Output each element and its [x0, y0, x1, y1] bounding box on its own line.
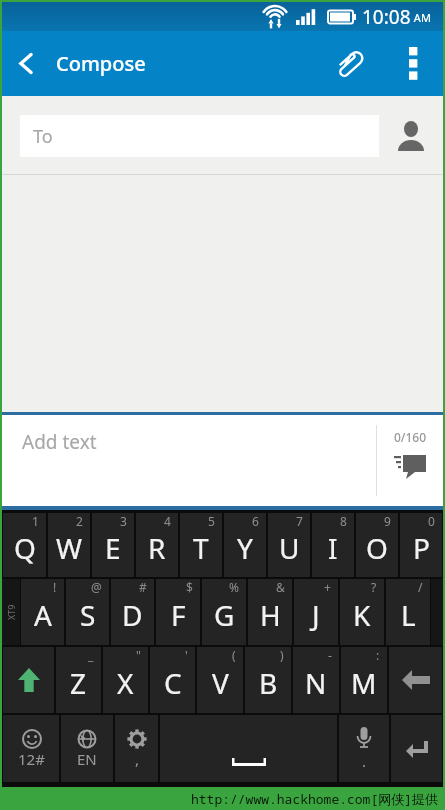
- staticText: K: [353, 596, 371, 634]
- staticText: J: [312, 596, 320, 634]
- staticText: To: [33, 124, 53, 149]
- button[interactable]: %: [202, 579, 246, 645]
- staticText: ,: [135, 749, 140, 769]
- button[interactable]: 6: [224, 513, 266, 577]
- staticText: S: [80, 596, 96, 634]
- staticText: 9: [384, 513, 391, 529]
- button[interactable]: EN: [61, 715, 113, 782]
- button[interactable]: (: [197, 647, 243, 713]
- staticText: Add text: [22, 429, 97, 455]
- button[interactable]: [379, 115, 443, 157]
- staticText: A: [34, 596, 52, 634]
- staticText: O: [366, 529, 388, 567]
- staticText: .: [362, 751, 367, 771]
- staticText: G: [214, 596, 235, 634]
- staticText: 8: [340, 513, 347, 529]
- button[interactable]: 3: [92, 513, 134, 577]
- staticText: Compose: [56, 50, 146, 77]
- staticText: F: [171, 596, 186, 634]
- button[interactable]: -: [293, 647, 339, 713]
- staticText: R: [148, 529, 166, 567]
- button[interactable]: 1: [3, 513, 46, 577]
- staticText: 0: [428, 513, 435, 529]
- button[interactable]: 9: [356, 513, 398, 577]
- staticText: ?: [371, 579, 377, 595]
- button[interactable]: [326, 31, 374, 96]
- button[interactable]: 0: [400, 513, 442, 577]
- button[interactable]: ": [103, 647, 148, 713]
- button[interactable]: !: [21, 579, 64, 645]
- staticText: AM: [411, 10, 431, 25]
- button[interactable]: &: [248, 579, 292, 645]
- staticText: Q: [14, 529, 36, 567]
- staticText: &: [276, 579, 285, 595]
- staticText: _: [88, 647, 94, 663]
- staticText: U: [279, 529, 300, 567]
- button[interactable]: 12#: [3, 715, 59, 782]
- staticText: 2: [76, 513, 83, 529]
- staticText: ": [136, 647, 141, 663]
- button[interactable]: 0/160: [377, 415, 443, 506]
- button[interactable]: Add text: [2, 415, 376, 506]
- button[interactable]: :: [341, 647, 387, 713]
- staticText: ): [280, 647, 284, 663]
- staticText: 0/160: [394, 429, 427, 445]
- staticText: 5: [208, 513, 215, 529]
- button[interactable]: [160, 715, 337, 782]
- staticText: P: [413, 529, 430, 567]
- staticText: V: [212, 664, 229, 702]
- staticText: %: [229, 579, 239, 595]
- button[interactable]: [2, 31, 50, 96]
- staticText: 6: [252, 513, 259, 529]
- button[interactable]: ,: [115, 715, 158, 782]
- staticText: EN: [77, 749, 97, 769]
- staticText: B: [259, 664, 278, 702]
- staticText: N: [305, 664, 327, 702]
- staticText: #: [139, 579, 147, 595]
- button[interactable]: To: [20, 115, 379, 157]
- staticText: /: [418, 579, 423, 595]
- button[interactable]: ?: [340, 579, 384, 645]
- button[interactable]: 8: [312, 513, 354, 577]
- staticText: +: [324, 579, 331, 595]
- staticText: M: [351, 664, 377, 702]
- button[interactable]: $: [156, 579, 200, 645]
- button[interactable]: 5: [180, 513, 222, 577]
- button[interactable]: .: [339, 715, 389, 782]
- staticText: $: [186, 579, 193, 595]
- button[interactable]: #: [111, 579, 154, 645]
- staticText: !: [53, 579, 57, 595]
- button[interactable]: ): [245, 647, 291, 713]
- button[interactable]: @: [66, 579, 109, 645]
- button[interactable]: 4: [136, 513, 178, 577]
- button[interactable]: ': [150, 647, 195, 713]
- button[interactable]: +: [294, 579, 338, 645]
- staticText: L: [401, 596, 416, 634]
- staticText: @: [91, 579, 102, 595]
- button[interactable]: 2: [48, 513, 90, 577]
- button[interactable]: _: [56, 647, 101, 713]
- button[interactable]: [3, 647, 54, 713]
- staticText: http://www.hackhome.com[网侠]提供: [191, 790, 439, 808]
- staticText: (: [232, 647, 236, 663]
- staticText: H: [260, 596, 281, 634]
- staticText: 12#: [18, 749, 45, 769]
- button[interactable]: [391, 715, 442, 782]
- staticText: X: [117, 664, 134, 702]
- button[interactable]: 7: [268, 513, 310, 577]
- button[interactable]: /: [386, 579, 430, 645]
- staticText: E: [105, 529, 121, 567]
- staticText: D: [122, 596, 143, 634]
- staticText: W: [56, 529, 83, 567]
- staticText: 1: [32, 513, 39, 529]
- staticText: :: [376, 647, 380, 663]
- staticText: 7: [296, 513, 303, 529]
- staticText: I: [328, 529, 338, 567]
- staticText: Y: [237, 529, 253, 567]
- button[interactable]: [389, 647, 442, 713]
- button[interactable]: [392, 31, 434, 96]
- staticText: ': [185, 647, 188, 663]
- staticText: 4: [164, 513, 171, 529]
- staticText: -: [328, 647, 332, 663]
- staticText: XT9: [5, 604, 17, 620]
